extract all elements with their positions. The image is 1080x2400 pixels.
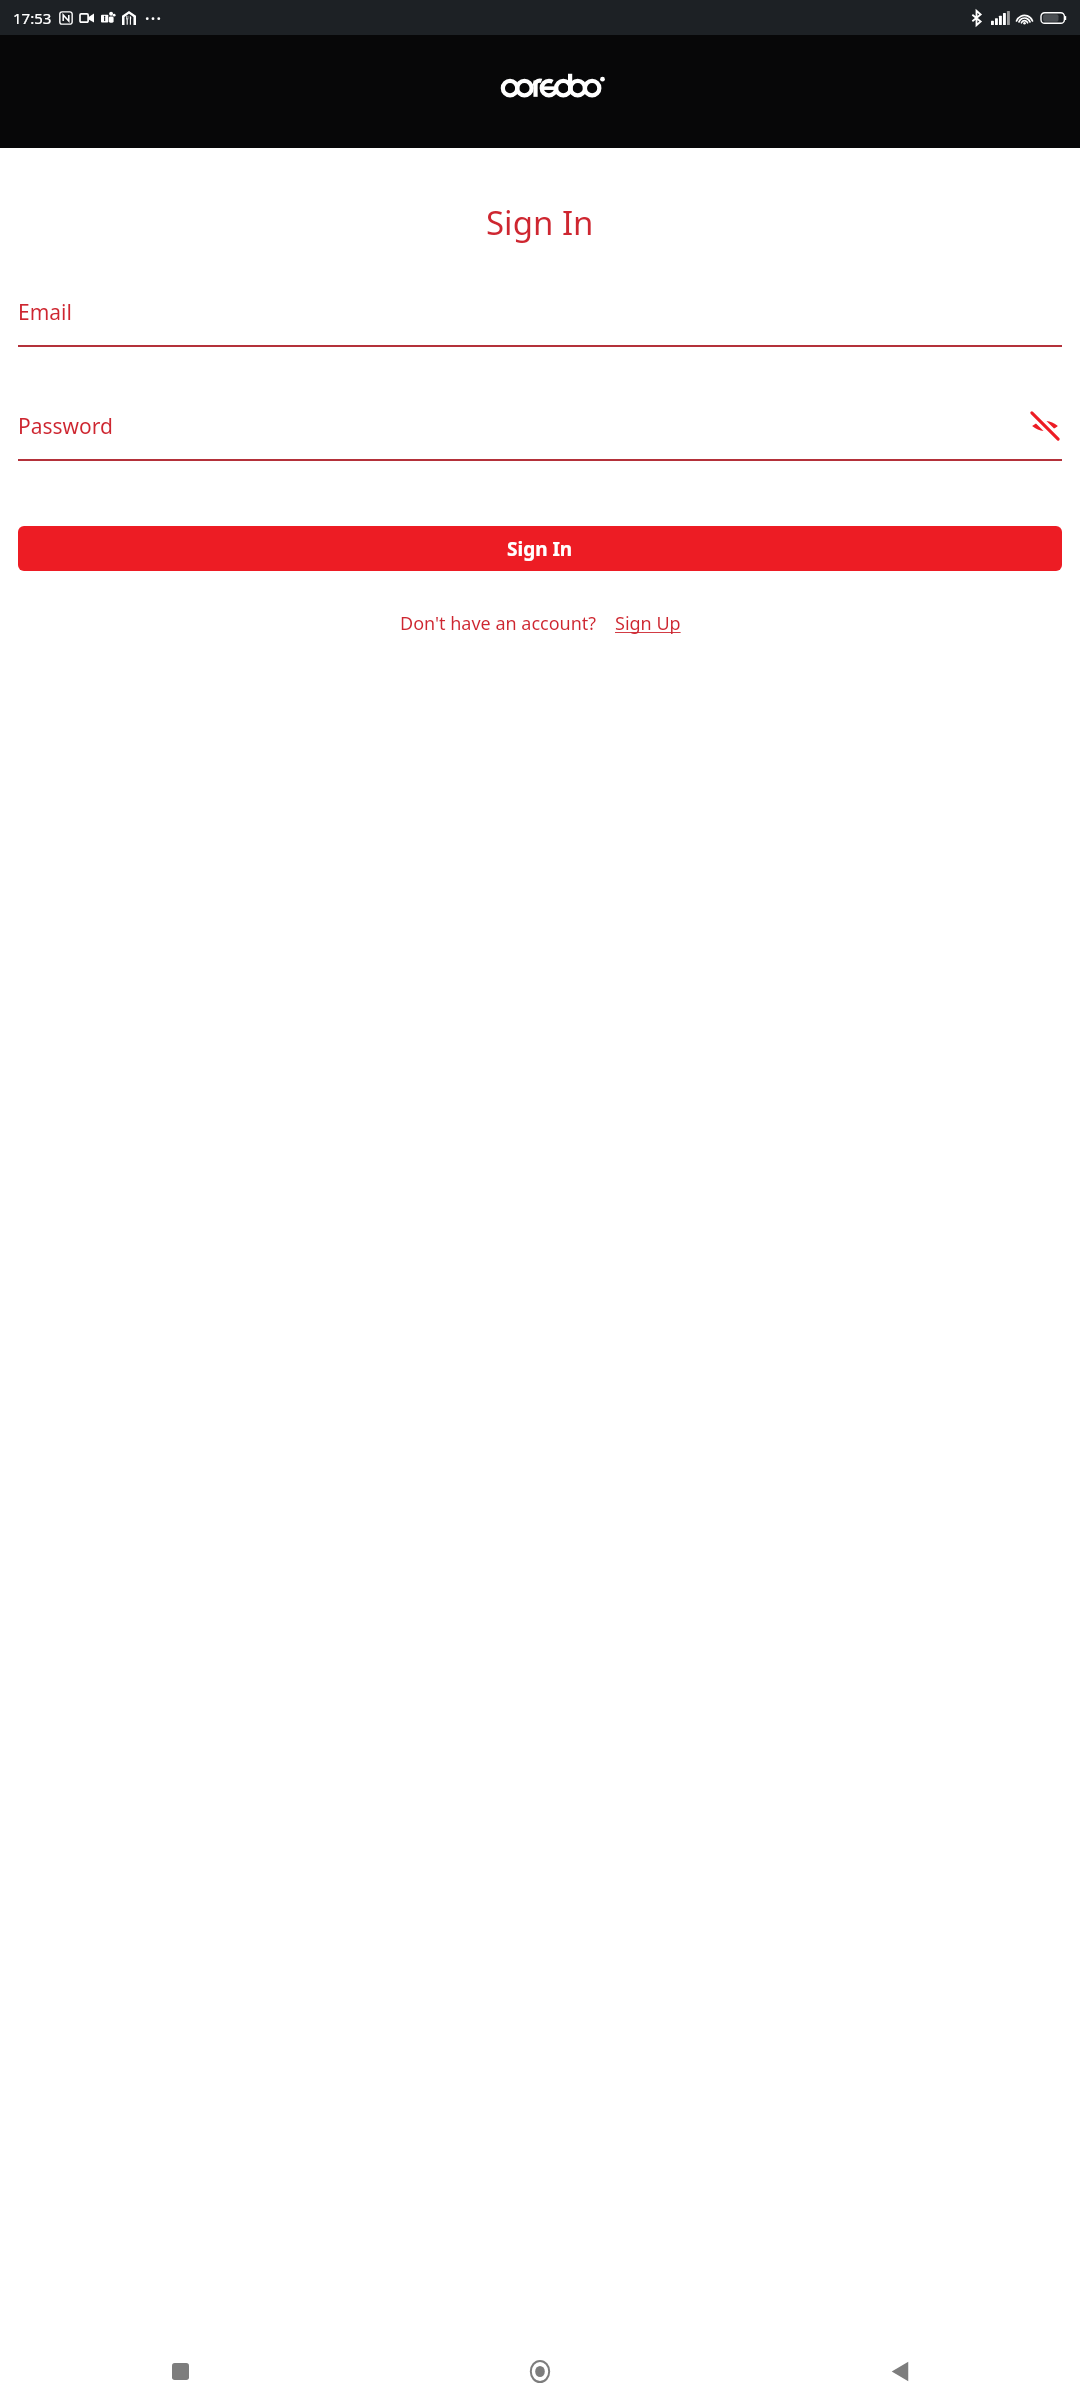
staticText: Password bbox=[18, 412, 113, 441]
staticText: Don't have an account? bbox=[400, 611, 597, 636]
button[interactable]: Recent apps bbox=[0, 2342, 360, 2400]
staticText: Email bbox=[18, 298, 72, 327]
staticText: 17:53 bbox=[13, 8, 52, 28]
button[interactable]: Show password bbox=[1028, 409, 1062, 443]
staticText: Sign In bbox=[486, 200, 594, 245]
staticText: Sign In bbox=[507, 536, 573, 562]
staticText: Sign Up bbox=[615, 611, 681, 636]
button[interactable]: Home bbox=[360, 2342, 720, 2400]
button[interactable]: Sign Up bbox=[615, 611, 681, 636]
button[interactable]: Sign In bbox=[18, 526, 1062, 571]
button[interactable]: Back bbox=[720, 2342, 1080, 2400]
